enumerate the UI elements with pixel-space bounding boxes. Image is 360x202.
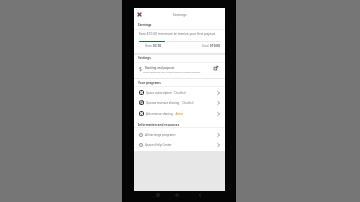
staticText: · Disabled: [173, 91, 186, 95]
staticText: $3.10: [153, 44, 162, 48]
staticText: Spaces Help Center: [145, 143, 172, 147]
staticText: Earn $10.00 minimum to receive your firs…: [139, 31, 215, 35]
staticText: Quoras revenue sharing: [146, 101, 180, 105]
button[interactable]: Home: [173, 191, 181, 199]
button[interactable]: Quoras revenue sharing: [134, 98, 225, 107]
staticText: All earnings programs: [145, 133, 176, 137]
staticText: Ad revenue sharing: [146, 112, 173, 116]
staticText: Banking and payouts: [145, 66, 175, 70]
staticText: · Disabled: [181, 101, 194, 105]
button[interactable]: Recents: [154, 191, 162, 199]
staticText: Settings: [138, 56, 151, 60]
button[interactable]: Spaces Help Center: [134, 140, 225, 149]
staticText: $10.00: [210, 44, 221, 48]
button[interactable]: $: [134, 64, 225, 78]
staticText: Space subscription: [146, 91, 172, 95]
button[interactable]: Back: [196, 191, 204, 199]
button[interactable]: Space subscription: [134, 88, 225, 97]
button[interactable]: Close: [135, 10, 144, 19]
staticText: · Active: [174, 112, 184, 116]
staticText: Goal: [202, 44, 209, 48]
button[interactable]: All earnings programs: [134, 130, 225, 139]
staticText: Earnings: [173, 12, 187, 16]
button[interactable]: Ad revenue sharing: [134, 109, 225, 118]
staticText: $: [139, 65, 142, 72]
staticText: Earnings: [138, 23, 152, 27]
staticText: Information and resources: [138, 123, 180, 127]
staticText: Your programs: [138, 81, 161, 85]
staticText: Finish setting up your Stripe account to…: [143, 71, 201, 74]
staticText: Now: [145, 44, 152, 48]
